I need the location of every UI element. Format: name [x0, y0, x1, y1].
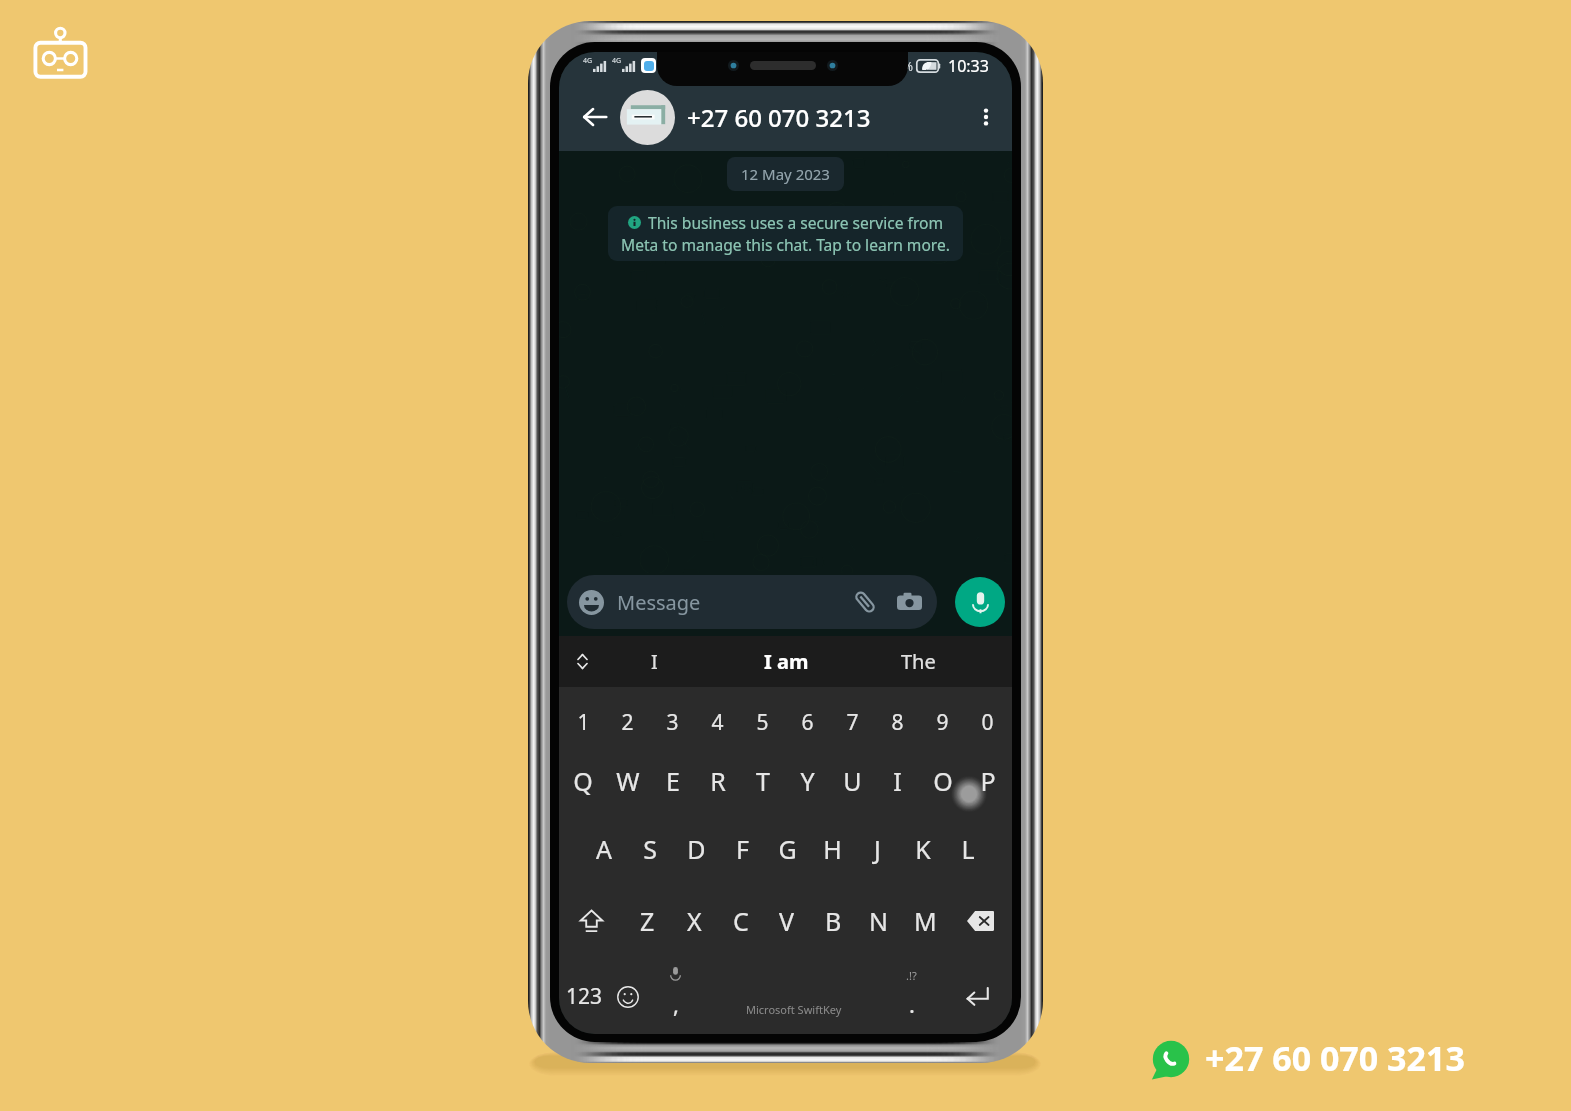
button[interactable]: P [965, 750, 1010, 812]
staticText: W [616, 764, 640, 798]
button[interactable]: E [650, 750, 695, 812]
staticText: 4G [612, 56, 622, 66]
button[interactable]: 123 [559, 959, 610, 1034]
staticText: D [687, 832, 706, 866]
staticText: 9 [936, 708, 949, 737]
button[interactable]: 2 [605, 687, 650, 757]
button[interactable]: I [588, 636, 720, 687]
staticText: 4G [583, 56, 593, 66]
staticText: 2 [621, 708, 634, 737]
button[interactable]: G [765, 815, 810, 883]
button[interactable]: Voice message [955, 577, 1005, 627]
staticText: V [779, 904, 795, 938]
button[interactable]: 3 [650, 687, 695, 757]
button[interactable]: A [581, 815, 627, 883]
button[interactable]: V [764, 887, 810, 955]
button[interactable]: S [627, 815, 673, 883]
staticText: N [869, 904, 889, 938]
button[interactable]: , [646, 959, 705, 1034]
staticText: H [823, 832, 842, 866]
button[interactable]: I [875, 750, 920, 812]
staticText: 6 [801, 708, 814, 737]
staticText: , [673, 989, 679, 1019]
button[interactable]: N [856, 887, 902, 955]
staticText: F [736, 832, 749, 866]
staticText: O [933, 764, 953, 798]
staticText: . [909, 989, 915, 1019]
staticText: 3 [666, 708, 679, 737]
staticText: C [733, 904, 749, 938]
staticText: B [825, 904, 842, 938]
button[interactable]: +27 60 070 3213 [687, 101, 970, 134]
button[interactable]: Backspace [948, 887, 1012, 955]
button[interactable]: 8 [875, 687, 920, 757]
button[interactable]: 1 [561, 687, 605, 757]
button[interactable]: Shift [559, 887, 624, 955]
staticText: L [961, 832, 975, 866]
button[interactable]: I am [720, 636, 852, 687]
button[interactable]: Attach [851, 588, 879, 616]
button[interactable]: R [695, 750, 740, 812]
button[interactable]: Emoji [610, 959, 646, 1034]
button[interactable]: C [718, 887, 764, 955]
staticText: S [643, 832, 657, 866]
staticText: .!? [906, 968, 917, 983]
button[interactable]: 9 [920, 687, 965, 757]
button[interactable]: Enter [940, 959, 1012, 1034]
staticText: 8 [891, 708, 904, 737]
button[interactable]: 0 [965, 687, 1010, 757]
staticText: 10:33 [948, 55, 989, 77]
staticText: I am [764, 648, 809, 675]
button[interactable]: 5 [740, 687, 785, 757]
button[interactable]: Message [579, 575, 923, 629]
button[interactable]: B [810, 887, 856, 955]
button[interactable]: O [920, 750, 965, 812]
staticText: 1 [577, 708, 590, 737]
staticText: +27 60 070 3213 [687, 101, 871, 134]
button[interactable]: Expand suggestions [563, 636, 601, 687]
button[interactable]: This business uses a secure service from [621, 212, 950, 255]
staticText: E [666, 764, 680, 798]
staticText: +27 60 070 3213 [1205, 1035, 1465, 1081]
button[interactable]: D [673, 815, 719, 883]
staticText: P [980, 764, 996, 798]
button[interactable]: W [605, 750, 650, 812]
staticText: Microsoft SwiftKey [746, 1002, 842, 1017]
staticText: I [651, 648, 658, 675]
staticText: T [756, 764, 770, 798]
staticText: % [903, 58, 913, 74]
button[interactable]: The [852, 636, 984, 687]
staticText: J [874, 832, 881, 866]
button[interactable]: .!? [883, 959, 940, 1034]
button[interactable]: 6 [785, 687, 830, 757]
button[interactable]: U [830, 750, 875, 812]
button[interactable]: 12 May 2023 [741, 164, 830, 184]
staticText: X [687, 904, 702, 938]
staticText: Meta to manage this chat. Tap to learn m… [621, 234, 950, 255]
button[interactable]: K [900, 815, 945, 883]
staticText: 0 [981, 708, 994, 737]
staticText: The [901, 648, 936, 675]
button[interactable]: X [671, 887, 718, 955]
button[interactable]: J [855, 815, 900, 883]
button[interactable]: H [810, 815, 855, 883]
staticText: Y [800, 764, 815, 798]
button[interactable]: F [719, 815, 765, 883]
staticText: Q [573, 764, 593, 798]
staticText: G [778, 832, 797, 866]
staticText: 12 May 2023 [741, 164, 830, 184]
button[interactable]: Camera [895, 588, 923, 616]
button[interactable]: Y [785, 750, 830, 812]
button[interactable]: Back [579, 101, 611, 133]
button[interactable]: T [740, 750, 785, 812]
staticText: M [914, 904, 937, 938]
button[interactable]: 4 [695, 687, 740, 757]
button[interactable]: 7 [830, 687, 875, 757]
button[interactable]: Z [624, 887, 671, 955]
button[interactable] [620, 90, 675, 145]
button[interactable]: L [945, 815, 990, 883]
button[interactable]: Q [561, 750, 605, 812]
button[interactable]: More options [970, 101, 1002, 133]
button[interactable]: M [902, 887, 948, 955]
button[interactable]: Microsoft SwiftKey [705, 959, 883, 1034]
